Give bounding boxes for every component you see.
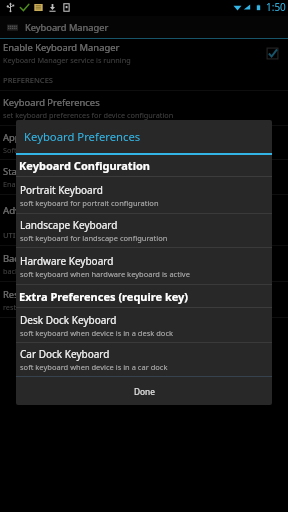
staticText: Keyboard Manager <box>25 21 109 34</box>
staticText: set keyboard preferences for device conf… <box>3 110 174 120</box>
staticText: Keyboard Manager service is running <box>3 55 131 65</box>
staticText: Keyboard Preferences <box>3 96 100 109</box>
staticText: soft keyboard when device is in a car do… <box>20 362 168 372</box>
button[interactable]: Backup <box>0 246 288 281</box>
staticText: Keyboard Preferences <box>24 129 141 144</box>
staticText: Extra Preferences (require key) <box>19 289 189 304</box>
staticText: soft keyboard when device is in a desk d… <box>20 328 174 338</box>
staticText: Restore <box>3 288 37 301</box>
button[interactable]: Keyboard Preferences <box>0 91 288 125</box>
staticText: Keyboard Configuration <box>19 158 150 173</box>
button[interactable]: Portrait Keyboard <box>16 177 272 213</box>
staticText: soft keyboard for landscape configuratio… <box>20 233 168 243</box>
other: Enable <box>265 46 280 61</box>
staticText: Status bar <box>3 165 48 178</box>
staticText: Enable notification icon <box>3 179 84 189</box>
staticText: Hardware Keyboard <box>20 254 114 268</box>
button[interactable]: Enable Keyboard Manager <box>0 39 288 70</box>
button[interactable]: Car Dock Keyboard <box>16 343 272 376</box>
staticText: Landscape Keyboard <box>20 218 118 232</box>
staticText: Software keyboard appearance <box>3 145 110 155</box>
staticText: Done <box>134 386 155 397</box>
button[interactable]: Status bar <box>0 160 288 194</box>
button[interactable]: Done <box>16 377 272 405</box>
button[interactable]: Advanced <box>0 195 288 225</box>
staticText: Desk Dock Keyboard <box>20 313 117 327</box>
button[interactable]: Desk Dock Keyboard <box>16 308 272 342</box>
button[interactable]: Appearance <box>0 126 288 159</box>
staticText: restore keyboard settings <box>3 302 91 312</box>
button[interactable]: Restore <box>0 282 288 317</box>
staticText: Advanced <box>3 204 48 217</box>
staticText: Car Dock Keyboard <box>20 347 110 361</box>
staticText: Enable Keyboard Manager <box>3 41 120 54</box>
staticText: 1:50 <box>266 0 286 14</box>
staticText: UTILITIES <box>3 230 38 240</box>
staticText: soft keyboard when hardware keyboard is … <box>20 269 190 279</box>
staticText: Backup <box>3 252 36 265</box>
staticText: backup keyboard settings <box>3 266 91 276</box>
staticText: PREFERENCES <box>3 75 54 85</box>
staticText: Appearance <box>3 131 56 144</box>
staticText: soft keyboard for portrait configuration <box>20 198 159 208</box>
button[interactable]: Landscape Keyboard <box>16 214 272 247</box>
staticText: Portrait Keyboard <box>20 183 103 197</box>
button[interactable]: Hardware Keyboard <box>16 248 272 284</box>
